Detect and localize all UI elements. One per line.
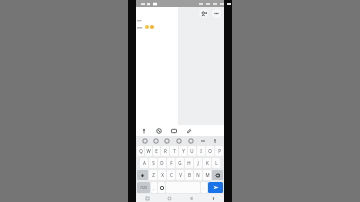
button[interactable]: T bbox=[170, 146, 178, 156]
staticText: N bbox=[196, 172, 200, 178]
staticText: F bbox=[170, 160, 173, 166]
button[interactable]: Settings bbox=[173, 136, 185, 145]
button[interactable]: Back bbox=[180, 194, 202, 202]
staticText: G bbox=[178, 160, 182, 166]
button[interactable]: Backspace bbox=[212, 170, 223, 180]
button[interactable]: Q bbox=[137, 146, 144, 156]
button[interactable]: O bbox=[206, 146, 214, 156]
button[interactable]: U bbox=[188, 146, 196, 156]
staticText: B bbox=[188, 172, 191, 178]
staticText: C bbox=[170, 172, 173, 178]
button[interactable]: GIF bbox=[170, 127, 178, 135]
button[interactable]: V bbox=[176, 170, 184, 180]
button[interactable]: Z bbox=[149, 170, 157, 180]
staticText: Y bbox=[182, 148, 185, 154]
button[interactable]: Home bbox=[158, 194, 180, 202]
staticText: . bbox=[203, 185, 205, 190]
button[interactable]: D bbox=[158, 158, 166, 168]
button[interactable]: Add person bbox=[199, 9, 208, 18]
button[interactable]: N bbox=[194, 170, 202, 180]
button[interactable]: B bbox=[185, 170, 193, 180]
button[interactable]: Collapse bbox=[197, 136, 209, 145]
staticText: S bbox=[152, 160, 155, 166]
staticText: T bbox=[173, 148, 176, 154]
button[interactable]: ?123 bbox=[137, 182, 150, 193]
button[interactable]: C bbox=[167, 170, 175, 180]
button[interactable]: Attach bbox=[185, 127, 193, 135]
button[interactable]: A bbox=[140, 158, 148, 168]
staticText: M bbox=[205, 172, 210, 178]
button[interactable]: H bbox=[185, 158, 193, 168]
button[interactable]: Period bbox=[201, 182, 207, 193]
staticText: Q bbox=[139, 148, 143, 154]
staticText: R bbox=[164, 148, 167, 154]
button[interactable]: Search bbox=[139, 136, 150, 145]
staticText: H bbox=[187, 160, 191, 166]
button[interactable]: X bbox=[158, 170, 166, 180]
button[interactable]: L bbox=[212, 158, 220, 168]
button[interactable]: Emoji bbox=[155, 127, 163, 135]
staticText: K bbox=[206, 160, 209, 166]
button[interactable]: Sticker bbox=[150, 136, 161, 145]
button[interactable]: J bbox=[194, 158, 202, 168]
staticText: W bbox=[146, 148, 151, 154]
staticText: E bbox=[155, 148, 158, 154]
button[interactable]: Y bbox=[179, 146, 187, 156]
button[interactable]: Recents bbox=[136, 194, 158, 202]
button[interactable]: F bbox=[167, 158, 175, 168]
button[interactable]: G bbox=[176, 158, 184, 168]
button[interactable]: W bbox=[145, 146, 152, 156]
button[interactable]: R bbox=[161, 146, 169, 156]
button[interactable]: E bbox=[153, 146, 160, 156]
staticText: D bbox=[160, 160, 164, 166]
button[interactable]: Theme bbox=[185, 136, 197, 145]
button[interactable]: Comma bbox=[151, 182, 157, 193]
staticText: V bbox=[179, 172, 182, 178]
button[interactable]: Keyboard indicator bbox=[202, 194, 224, 202]
staticText: Z bbox=[152, 172, 155, 178]
staticText: , bbox=[153, 185, 155, 190]
staticText: O bbox=[208, 148, 212, 154]
button[interactable]: GIF bbox=[161, 136, 173, 145]
button[interactable]: Send bbox=[208, 182, 223, 193]
staticText: P bbox=[218, 148, 221, 154]
staticText: U bbox=[190, 148, 194, 154]
button[interactable]: Emoji bbox=[158, 182, 165, 193]
staticText: X bbox=[161, 172, 164, 178]
button[interactable]: S bbox=[149, 158, 157, 168]
button[interactable]: P bbox=[215, 146, 223, 156]
button[interactable]: K bbox=[203, 158, 211, 168]
button[interactable]: More options bbox=[212, 9, 221, 18]
button[interactable]: M bbox=[203, 170, 211, 180]
staticText: L bbox=[215, 160, 218, 166]
staticText: I bbox=[200, 148, 202, 154]
button[interactable]: Voice bbox=[140, 127, 148, 135]
button[interactable]: Shift bbox=[137, 170, 148, 180]
staticText: J bbox=[197, 160, 199, 166]
staticText: A bbox=[143, 160, 146, 166]
staticText: ?123 bbox=[140, 186, 147, 190]
button[interactable]: I bbox=[197, 146, 205, 156]
button[interactable]: Voice input bbox=[209, 136, 221, 145]
